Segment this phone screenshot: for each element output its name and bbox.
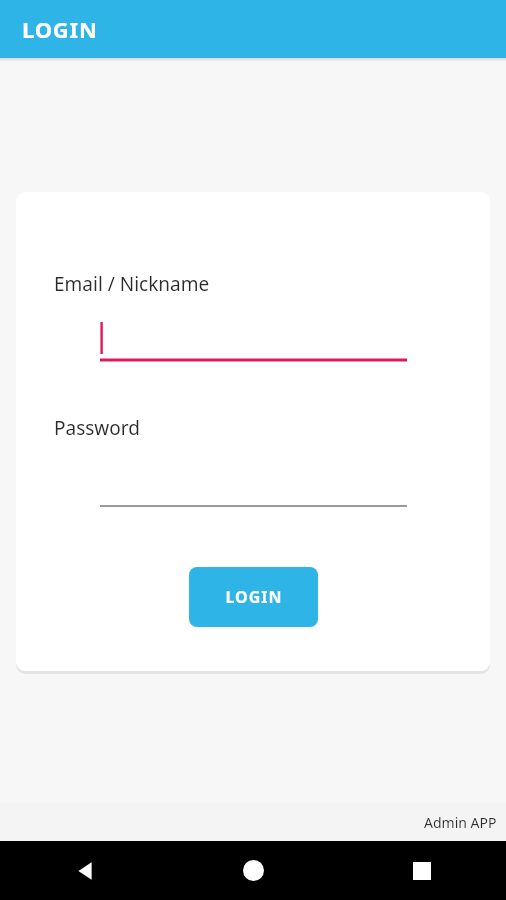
button[interactable]: Recent apps bbox=[338, 841, 506, 900]
button[interactable]: Password input bbox=[100, 460, 407, 508]
staticText: Email / Nickname bbox=[54, 271, 210, 297]
button[interactable]: Admin APP bbox=[0, 803, 506, 841]
staticText: Password bbox=[54, 415, 140, 441]
button[interactable]: Email or Nickname input bbox=[100, 318, 407, 366]
staticText: LOGIN bbox=[225, 586, 283, 608]
button[interactable]: LOGIN bbox=[189, 567, 318, 627]
button[interactable]: Home bbox=[169, 841, 338, 900]
staticText: LOGIN bbox=[22, 14, 98, 44]
button[interactable]: Back bbox=[0, 841, 169, 900]
staticText: Admin APP bbox=[424, 813, 497, 832]
